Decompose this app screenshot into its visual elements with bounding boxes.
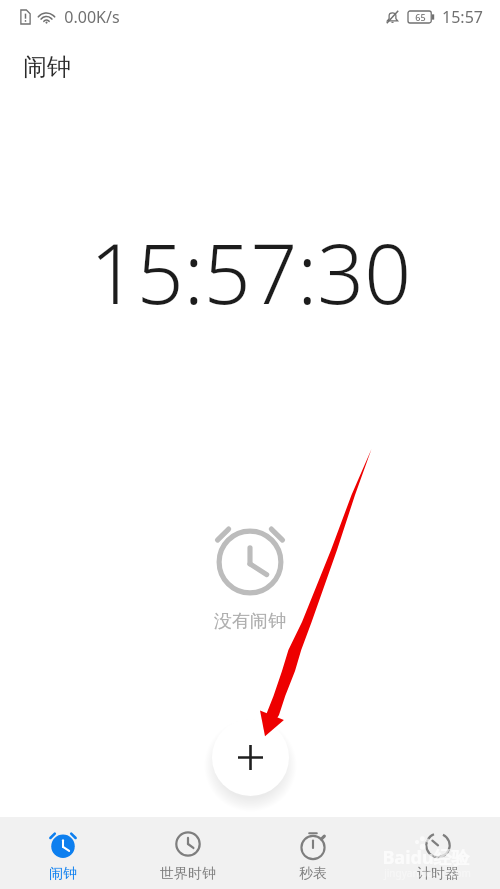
staticText: 15:57 bbox=[442, 6, 483, 28]
button[interactable]: 计时器 bbox=[375, 817, 500, 889]
staticText: 闹钟 bbox=[23, 52, 71, 82]
staticText: 闹钟 bbox=[49, 865, 77, 883]
staticText: Baidu经验 bbox=[382, 845, 470, 870]
button[interactable]: 秒表 bbox=[250, 817, 375, 889]
staticText: jingyan.baidu.com bbox=[384, 866, 471, 880]
button[interactable]: 闹钟 bbox=[0, 817, 125, 889]
staticText: 0.00K/s bbox=[64, 6, 120, 28]
staticText: 计时器 bbox=[417, 865, 459, 883]
staticText: 秒表 bbox=[299, 865, 327, 883]
staticText: 没有闹钟 bbox=[214, 610, 286, 633]
button[interactable]: 世界时钟 bbox=[125, 817, 250, 889]
staticText: 65 bbox=[415, 11, 426, 23]
button[interactable]: Add alarm bbox=[212, 719, 289, 796]
staticText: 15:57:30 bbox=[90, 216, 411, 328]
staticText: 世界时钟 bbox=[160, 865, 216, 883]
